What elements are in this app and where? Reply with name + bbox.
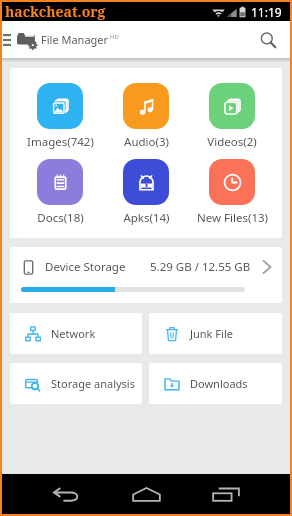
staticText: New Files(13) [197, 210, 268, 226]
staticText: Audio(3) [124, 134, 169, 150]
button[interactable]: Audio(3) [103, 83, 189, 150]
staticText: Apks(14) [123, 210, 170, 226]
staticText: Storage analysis [51, 376, 135, 391]
button[interactable]: Back [26, 474, 106, 514]
button[interactable]: Images(742) [17, 83, 103, 150]
button[interactable]: Menu [2, 30, 11, 50]
button[interactable]: Recents [186, 474, 266, 514]
button[interactable]: Junk File [149, 313, 282, 354]
staticText: Docs(18) [37, 210, 84, 226]
staticText: Junk File [190, 326, 233, 341]
staticText: File Manager [41, 32, 109, 47]
button[interactable]: Network [10, 313, 142, 354]
button[interactable]: Search [254, 26, 282, 54]
button[interactable]: Downloads [149, 363, 282, 404]
staticText: Network [51, 326, 96, 341]
staticText: hackcheat.org [5, 2, 106, 21]
button[interactable]: Storage analysis [10, 363, 142, 404]
staticText: Device Storage [45, 259, 126, 275]
button[interactable]: Apks(14) [103, 159, 189, 226]
button[interactable]: Home [106, 474, 186, 514]
button[interactable]: New Files(13) [189, 159, 275, 226]
button[interactable]: Device Storage [10, 247, 282, 303]
button[interactable]: Docs(18) [17, 159, 103, 226]
staticText: HD [110, 33, 119, 41]
staticText: Images(742) [27, 134, 94, 150]
staticText: 5.29 GB / 12.55 GB [150, 259, 251, 275]
staticText: Downloads [190, 376, 248, 391]
button[interactable]: Videos(2) [189, 83, 275, 150]
staticText: Videos(2) [207, 134, 257, 150]
staticText: 11:19 [251, 4, 282, 20]
